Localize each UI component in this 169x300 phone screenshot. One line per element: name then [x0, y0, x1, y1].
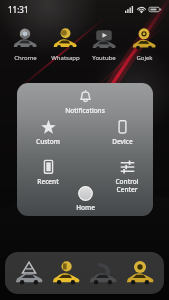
- staticText: Recent: [37, 177, 59, 186]
- button[interactable]: Recent: [25, 159, 71, 186]
- button[interactable]: Camera: [123, 256, 157, 290]
- staticText: Notifications: [65, 106, 105, 115]
- staticText: Custom: [36, 137, 60, 146]
- button[interactable]: Phone: [86, 256, 120, 290]
- button[interactable]: Youtube: [85, 26, 123, 62]
- button[interactable]: Notifications: [62, 88, 108, 115]
- staticText: 11:31: [8, 4, 29, 15]
- button[interactable]: Custom: [25, 119, 71, 146]
- button[interactable]: App Store: [12, 256, 46, 290]
- staticText: Chrome: [14, 54, 37, 62]
- button[interactable]: Whatsapp: [46, 26, 84, 62]
- staticText: Youtube: [92, 54, 116, 62]
- button[interactable]: Device: [99, 119, 145, 146]
- button[interactable]: Home: [62, 185, 108, 212]
- staticText: Control Center: [115, 177, 139, 194]
- button[interactable]: Chrome: [6, 26, 44, 62]
- button[interactable]: Control Center: [104, 159, 150, 194]
- button[interactable]: Gojek: [125, 26, 163, 62]
- staticText: Device: [112, 137, 133, 146]
- button[interactable]: Gallery: [49, 256, 83, 290]
- staticText: Whatsapp: [51, 54, 80, 62]
- staticText: Gojek: [136, 54, 153, 62]
- staticText: Home: [76, 203, 95, 212]
